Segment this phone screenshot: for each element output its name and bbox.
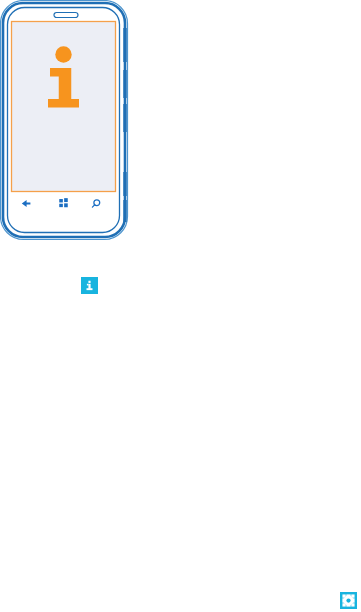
button[interactable]: Information xyxy=(81,277,98,294)
button[interactable]: Settings xyxy=(340,592,357,609)
button[interactable]: Windows Phone illustration xyxy=(0,0,140,250)
